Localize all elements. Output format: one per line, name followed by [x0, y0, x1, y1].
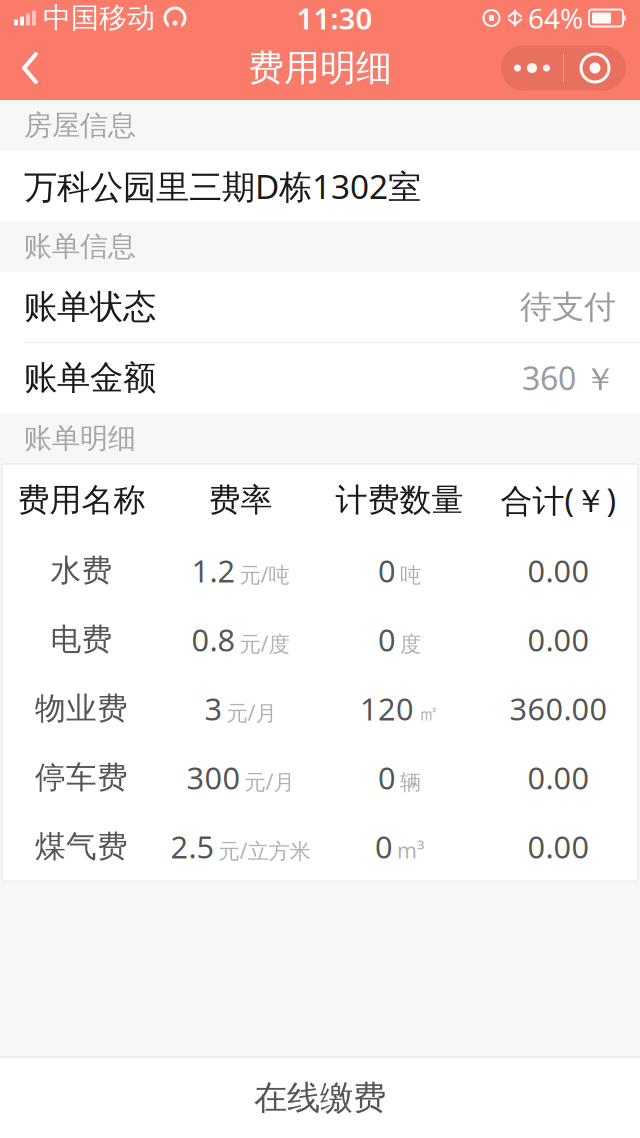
staticText: 0.00: [527, 550, 589, 591]
staticText: 账单信息: [24, 229, 136, 264]
staticText: 待支付: [520, 287, 616, 327]
staticText: 煤气费: [35, 828, 128, 865]
staticText: 辆: [400, 769, 421, 795]
staticText: 账单状态: [24, 286, 156, 327]
button[interactable]: 返回: [0, 36, 60, 100]
staticText: 11:30: [296, 0, 372, 37]
staticText: 费用明细: [248, 46, 392, 90]
staticText: 360 ￥: [522, 357, 616, 399]
staticText: m³: [397, 836, 424, 864]
staticText: 计费数量: [335, 480, 463, 520]
staticText: 3: [204, 688, 222, 729]
staticText: 120: [360, 688, 414, 729]
staticText: 水费: [50, 552, 112, 589]
staticText: ㎡: [418, 700, 439, 726]
staticText: 0: [378, 757, 396, 798]
staticText: 0: [375, 826, 393, 867]
staticText: 物业费: [35, 690, 128, 727]
staticText: 吨: [400, 562, 421, 588]
staticText: 64%: [528, 0, 583, 37]
staticText: 300: [186, 757, 240, 798]
staticText: 0.8: [191, 619, 235, 660]
staticText: 2.5: [170, 826, 214, 867]
staticText: 度: [400, 631, 421, 657]
button[interactable]: 更多: [501, 45, 626, 90]
staticText: 元/月: [244, 767, 294, 796]
staticText: 元/吨: [239, 560, 289, 589]
staticText: 账单金额: [24, 357, 156, 398]
staticText: 停车费: [35, 759, 128, 796]
staticText: 0.00: [527, 757, 589, 798]
staticText: 账单明细: [24, 421, 136, 456]
staticText: 0: [378, 619, 396, 660]
staticText: 在线缴费: [254, 1077, 386, 1118]
staticText: 0.00: [527, 619, 589, 660]
staticText: 0.00: [527, 826, 589, 867]
staticText: 合计(￥): [500, 479, 616, 521]
staticText: 费率: [208, 480, 272, 520]
staticText: 元/度: [239, 629, 289, 658]
staticText: 0: [378, 550, 396, 591]
staticText: 费用名称: [17, 480, 145, 520]
button[interactable]: 在线缴费: [0, 1058, 640, 1138]
staticText: 元/月: [226, 698, 276, 727]
staticText: 中国移动: [43, 1, 155, 35]
staticText: 房屋信息: [24, 108, 136, 143]
staticText: 360.00: [509, 688, 607, 729]
staticText: 电费: [50, 621, 112, 658]
staticText: 万科公园里三期D栋1302室: [24, 164, 421, 208]
staticText: 1.2: [191, 550, 235, 591]
staticText: 元/立方米: [218, 836, 310, 865]
